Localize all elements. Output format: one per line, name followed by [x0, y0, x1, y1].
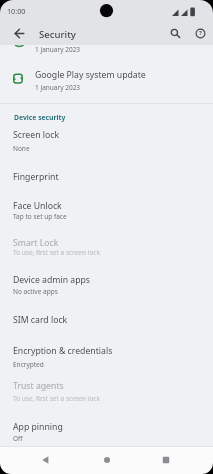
staticText: Device security [14, 113, 66, 122]
button[interactable]: SIM card lock [0, 305, 213, 335]
button[interactable]: Google Play system update [0, 60, 213, 103]
staticText: Face Unlock [13, 200, 62, 212]
button[interactable] [6, 22, 32, 44]
staticText: Security [39, 28, 76, 41]
staticText: Encrypted [13, 360, 44, 369]
button[interactable]: ? [189, 22, 212, 44]
staticText: No active apps [13, 287, 58, 296]
staticText: 1 January 2023 [35, 83, 81, 92]
button[interactable]: Security update [0, 20, 213, 60]
staticText: Encryption & credentials [13, 345, 113, 357]
staticText: Trust agents [13, 380, 64, 392]
staticText: Device admin apps [13, 274, 90, 286]
button[interactable] [151, 446, 181, 474]
staticText: Tap to set up face [13, 212, 67, 221]
staticText: To use, first set a screen lock [13, 394, 100, 403]
button[interactable]: Fingerprint [0, 162, 213, 192]
staticText: To use, first set a screen lock [13, 248, 100, 257]
button[interactable]: Encryption & credentials [0, 335, 213, 373]
staticText: Security update [35, 31, 99, 43]
staticText: 10:00 [7, 6, 26, 16]
button[interactable]: App pinning [0, 411, 213, 446]
staticText: App pinning [13, 421, 63, 433]
button[interactable]: Face Unlock [0, 192, 213, 230]
staticText: None [13, 144, 30, 153]
staticText: ? [199, 29, 202, 37]
button[interactable] [31, 446, 61, 474]
button[interactable]: Device admin apps [0, 266, 213, 305]
button[interactable] [92, 446, 122, 474]
staticText: Google Play system update [35, 69, 146, 81]
staticText: 1 January 2023 [35, 45, 81, 54]
staticText: Fingerprint [13, 171, 59, 183]
button[interactable]: Screen lock [0, 122, 213, 162]
button[interactable]: Trust agents [0, 373, 213, 411]
staticText: Smart Lock [13, 237, 59, 249]
staticText: Off [13, 434, 23, 443]
button[interactable] [164, 22, 187, 44]
staticText: Screen lock [13, 129, 60, 141]
staticText: SIM card lock [13, 314, 68, 326]
button[interactable]: Smart Lock [0, 230, 213, 266]
